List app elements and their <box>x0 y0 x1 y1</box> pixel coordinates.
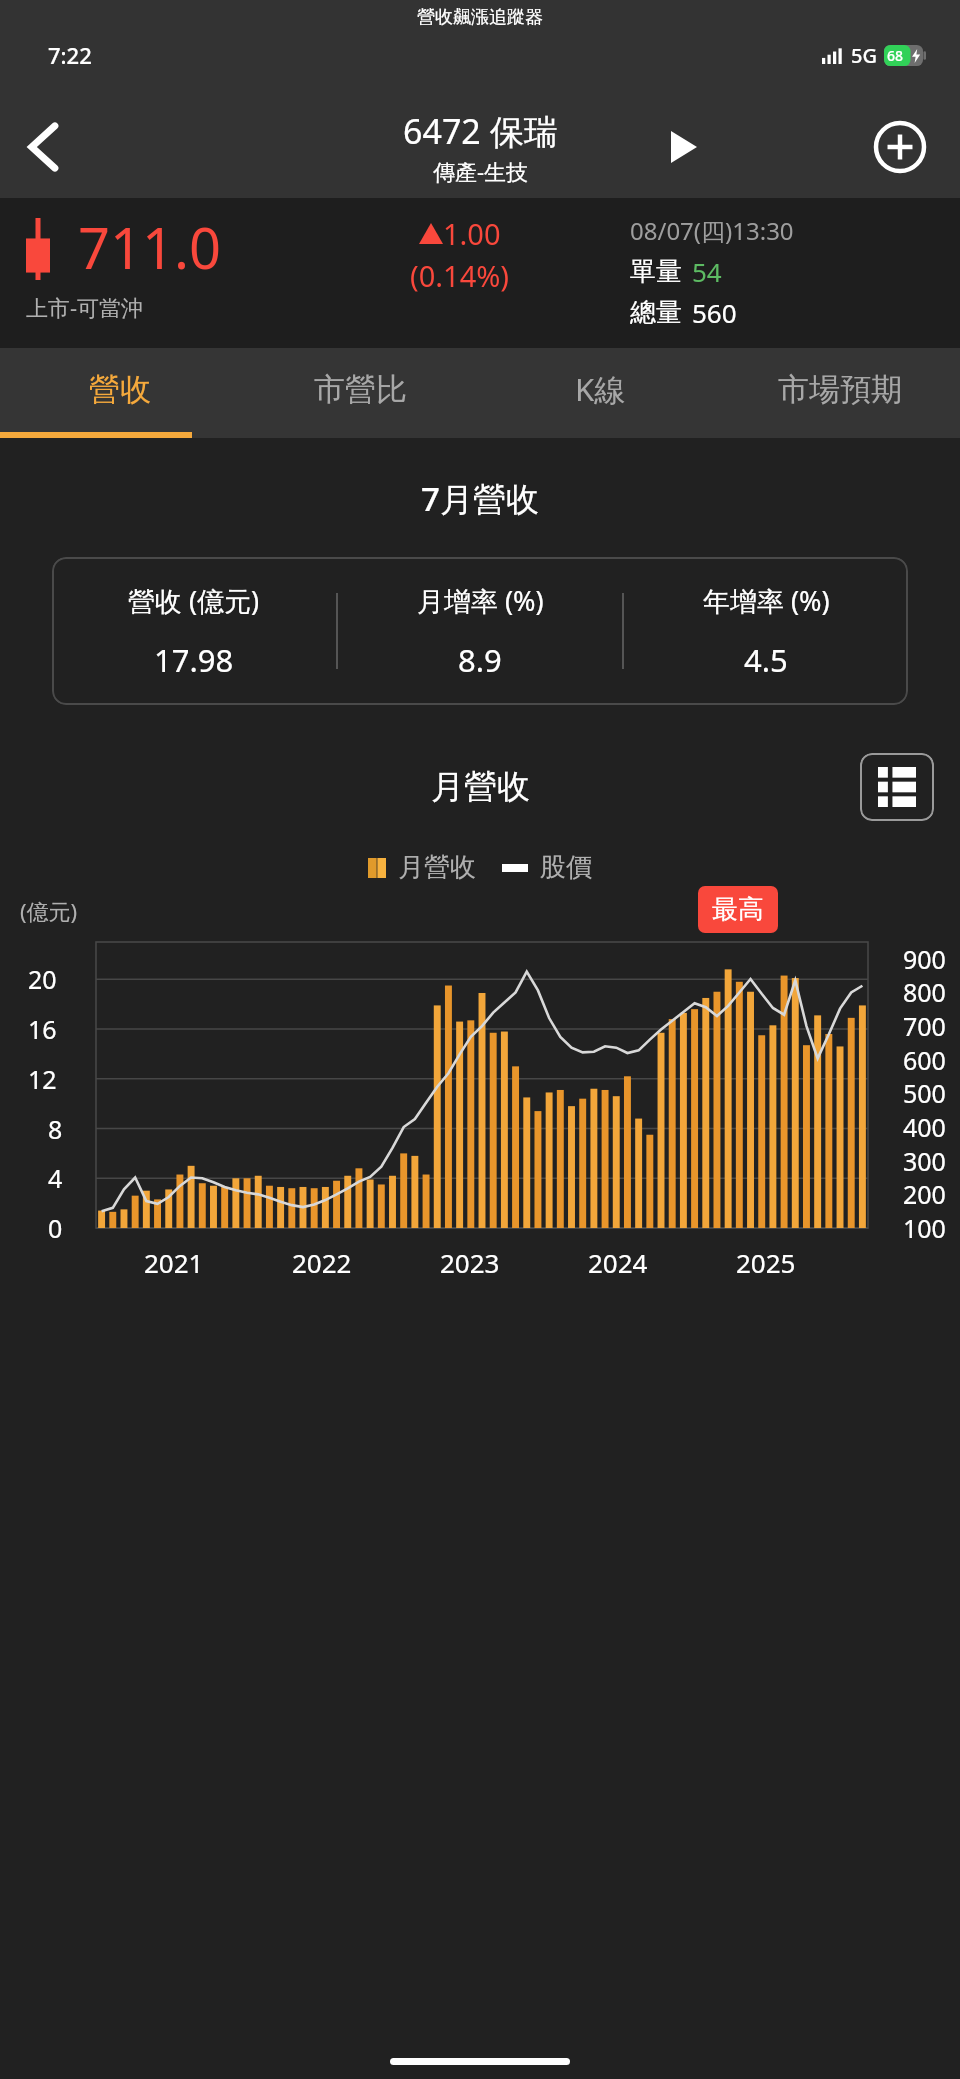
staticText: 股價 <box>540 851 592 884</box>
staticText: 2023 <box>440 1245 500 1280</box>
staticText: 月增率 (%) <box>417 582 544 619</box>
staticText: 08/07(四)13:30 <box>630 214 794 247</box>
staticText: 600 <box>903 1043 946 1077</box>
staticText: 營收 <box>89 370 151 409</box>
staticText: 市場預期 <box>778 370 902 409</box>
staticText: 8 <box>48 1112 63 1146</box>
button[interactable]: Table view <box>860 753 934 821</box>
staticText: 6472 保瑞 <box>403 108 558 154</box>
staticText: K線 <box>575 368 626 410</box>
staticText: 500 <box>903 1076 946 1110</box>
staticText: 68 <box>887 46 904 65</box>
button[interactable]: K線 <box>480 348 720 438</box>
staticText: 市營比 <box>314 370 407 409</box>
staticText: 營收 (億元) <box>128 582 260 619</box>
staticText: 7:22 <box>48 40 92 70</box>
button[interactable]: 市場預期 <box>720 348 960 438</box>
button[interactable]: Play <box>648 111 720 183</box>
staticText: 20 <box>28 962 57 996</box>
staticText: 1.00 <box>443 214 501 253</box>
staticText: 200 <box>903 1177 946 1211</box>
staticText: 17.98 <box>154 639 234 681</box>
staticText: 400 <box>903 1110 946 1144</box>
staticText: (億元) <box>20 896 78 926</box>
staticText: 12 <box>28 1062 57 1096</box>
staticText: 2024 <box>588 1245 648 1280</box>
staticText: 月營收 <box>398 851 476 884</box>
button[interactable]: Add <box>862 109 938 185</box>
button[interactable]: Back <box>8 111 80 183</box>
staticText: 2022 <box>292 1245 352 1280</box>
button[interactable]: 營收 <box>0 348 240 438</box>
staticText: 總量 <box>630 296 682 329</box>
staticText: 5G <box>851 42 877 69</box>
staticText: 營收飆漲追蹤器 <box>417 6 543 29</box>
staticText: 最高 <box>712 893 764 926</box>
staticText: 711.0 <box>78 209 222 285</box>
staticText: 2025 <box>736 1245 796 1280</box>
staticText: 8.9 <box>458 639 502 681</box>
staticText: 7月營收 <box>0 476 960 521</box>
staticText: 0 <box>48 1211 63 1245</box>
button[interactable]: 市營比 <box>240 348 480 438</box>
staticText: 年增率 (%) <box>703 582 830 619</box>
staticText: 54 <box>692 254 722 289</box>
staticText: 4.5 <box>744 639 788 681</box>
staticText: 2021 <box>144 1245 204 1280</box>
staticText: 月營收 <box>431 766 530 808</box>
staticText: 上市-可當沖 <box>26 292 144 322</box>
staticText: 900 <box>903 942 946 976</box>
staticText: 單量 <box>630 255 682 288</box>
staticText: 560 <box>692 295 737 330</box>
staticText: 傳產-生技 <box>433 156 529 186</box>
staticText: (0.14%) <box>410 256 510 295</box>
staticText: 16 <box>28 1012 57 1046</box>
staticText: 300 <box>903 1144 946 1178</box>
staticText: 800 <box>903 975 946 1009</box>
staticText: 4 <box>48 1161 63 1195</box>
staticText: 700 <box>903 1009 946 1043</box>
button[interactable]: 營收 (億元) <box>52 557 908 705</box>
staticText: 100 <box>903 1211 946 1245</box>
